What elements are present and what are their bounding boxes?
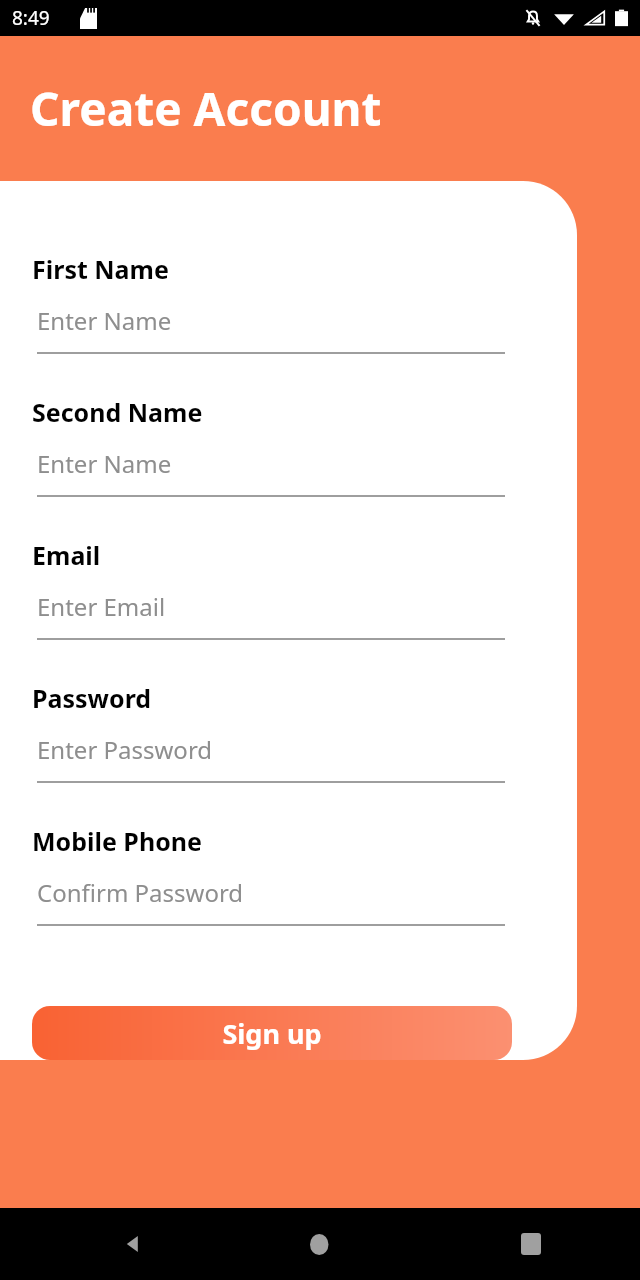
staticText: Enter Password xyxy=(37,733,213,766)
staticText: Mobile Phone xyxy=(32,824,202,858)
staticText: Enter Name xyxy=(37,304,172,337)
staticText: 8:49 xyxy=(12,5,50,31)
staticText: Enter Name xyxy=(37,447,172,480)
button[interactable]: Back xyxy=(105,1216,161,1272)
button[interactable]: Enter Email xyxy=(37,590,505,640)
staticText: First Name xyxy=(32,252,169,286)
staticText: Email xyxy=(32,538,101,572)
button[interactable]: Enter Name xyxy=(37,304,505,354)
staticText: Enter Email xyxy=(37,590,166,623)
button[interactable]: Confirm Password xyxy=(37,876,505,926)
button[interactable]: Home xyxy=(292,1216,348,1272)
staticText: Second Name xyxy=(32,395,203,429)
staticText: Confirm Password xyxy=(37,876,244,909)
button[interactable]: Enter Name xyxy=(37,447,505,497)
button[interactable]: Sign up xyxy=(32,1006,512,1060)
staticText: Create Account xyxy=(30,77,382,140)
button[interactable]: Enter Password xyxy=(37,733,505,783)
button[interactable]: Recent apps xyxy=(503,1216,559,1272)
staticText: Password xyxy=(32,681,152,715)
staticText: Sign up xyxy=(222,1015,322,1052)
